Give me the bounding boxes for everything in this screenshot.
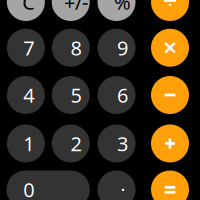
button[interactable]: Equals — [151, 170, 189, 200]
button[interactable]: 3 — [97, 124, 135, 162]
button[interactable]: 4 — [7, 76, 45, 114]
staticText: +/- — [64, 0, 88, 15]
button[interactable]: 5 — [52, 76, 90, 114]
button[interactable]: Divide — [151, 0, 189, 21]
staticText: 1 — [23, 130, 34, 157]
staticText: 8 — [70, 34, 81, 61]
button[interactable]: Plus Minus — [52, 0, 90, 21]
staticText: 0 — [23, 176, 34, 200]
staticText: 2 — [70, 130, 81, 157]
button[interactable]: Decimal point — [97, 170, 135, 200]
button[interactable]: 0 — [6, 170, 90, 200]
button[interactable]: 7 — [7, 29, 45, 67]
button[interactable]: Subtract — [151, 76, 189, 114]
staticText: C — [22, 0, 35, 15]
button[interactable]: 2 — [52, 124, 90, 162]
staticText: 9 — [117, 34, 128, 61]
staticText: 3 — [117, 130, 128, 157]
button[interactable]: 6 — [97, 76, 135, 114]
button[interactable]: 9 — [97, 29, 135, 67]
staticText: % — [114, 0, 131, 15]
button[interactable]: Add — [151, 124, 189, 162]
button[interactable]: 8 — [52, 29, 90, 67]
button[interactable]: Clear — [7, 0, 45, 21]
staticText: 4 — [23, 82, 34, 108]
staticText: 7 — [23, 34, 34, 61]
button[interactable]: Percent — [97, 0, 135, 21]
button[interactable]: Multiply — [151, 29, 189, 67]
button[interactable]: 1 — [7, 124, 45, 162]
staticText: 5 — [70, 82, 81, 108]
staticText: 6 — [117, 82, 128, 108]
